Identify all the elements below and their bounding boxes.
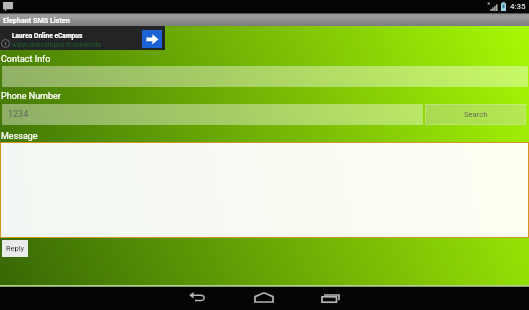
button[interactable]: Laurea Online eCampus (0, 26, 165, 50)
button[interactable] (2, 66, 528, 87)
staticText: Contact Info (1, 54, 51, 65)
staticText: 1234 (8, 109, 29, 120)
staticText: Laurea Online eCampus (12, 32, 83, 40)
button[interactable]: Recent apps (309, 287, 353, 309)
staticText: www.uniecampus.it/universita (12, 41, 101, 49)
staticText: Phone Number (1, 91, 61, 102)
staticText: Elephant SMS Listen (3, 16, 70, 24)
staticText: Search (464, 110, 488, 119)
button[interactable]: Reply (2, 240, 28, 257)
staticText: Reply (6, 244, 24, 253)
button[interactable]: Home (242, 287, 286, 309)
button[interactable]: Back (176, 287, 220, 309)
button[interactable] (2, 104, 423, 125)
button[interactable]: Open advertisement (142, 30, 162, 48)
button[interactable]: Search (425, 104, 526, 125)
button[interactable] (0, 142, 529, 238)
staticText: 4:35 (510, 2, 526, 11)
staticText: Message (1, 131, 38, 142)
